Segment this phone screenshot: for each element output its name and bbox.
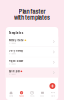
button[interactable]: Sprint plan (6, 68, 58, 78)
staticText: 3 tasks (9, 52, 16, 55)
button[interactable]: New task (49, 83, 55, 89)
staticText: 6 tasks (9, 72, 16, 76)
button[interactable]: Tasks (16, 91, 27, 97)
staticText: Home (9, 94, 13, 97)
staticText: Weekly review (9, 38, 24, 42)
staticText: Project kickoff (9, 59, 23, 63)
staticText: Daily standup (9, 49, 23, 52)
staticText: More (51, 94, 55, 97)
button[interactable]: More (48, 91, 58, 97)
button[interactable]: Home (6, 91, 16, 97)
staticText: 5 tasks (9, 41, 16, 45)
staticText: 8 tasks (9, 62, 16, 65)
staticText: with templates (14, 13, 50, 22)
staticText: Tasks (19, 94, 24, 97)
button[interactable]: Project kickoff (6, 57, 58, 67)
staticText: Focus (29, 94, 34, 97)
button[interactable]: Inbox (37, 91, 48, 97)
staticText: Inbox (40, 94, 44, 97)
button[interactable]: Daily standup (6, 47, 58, 57)
staticText: Templates (9, 31, 24, 35)
button[interactable]: Focus (27, 91, 37, 97)
staticText: Plan faster (18, 7, 45, 16)
staticText: Sprint plan (9, 70, 20, 73)
button[interactable]: Weekly review (6, 37, 58, 47)
